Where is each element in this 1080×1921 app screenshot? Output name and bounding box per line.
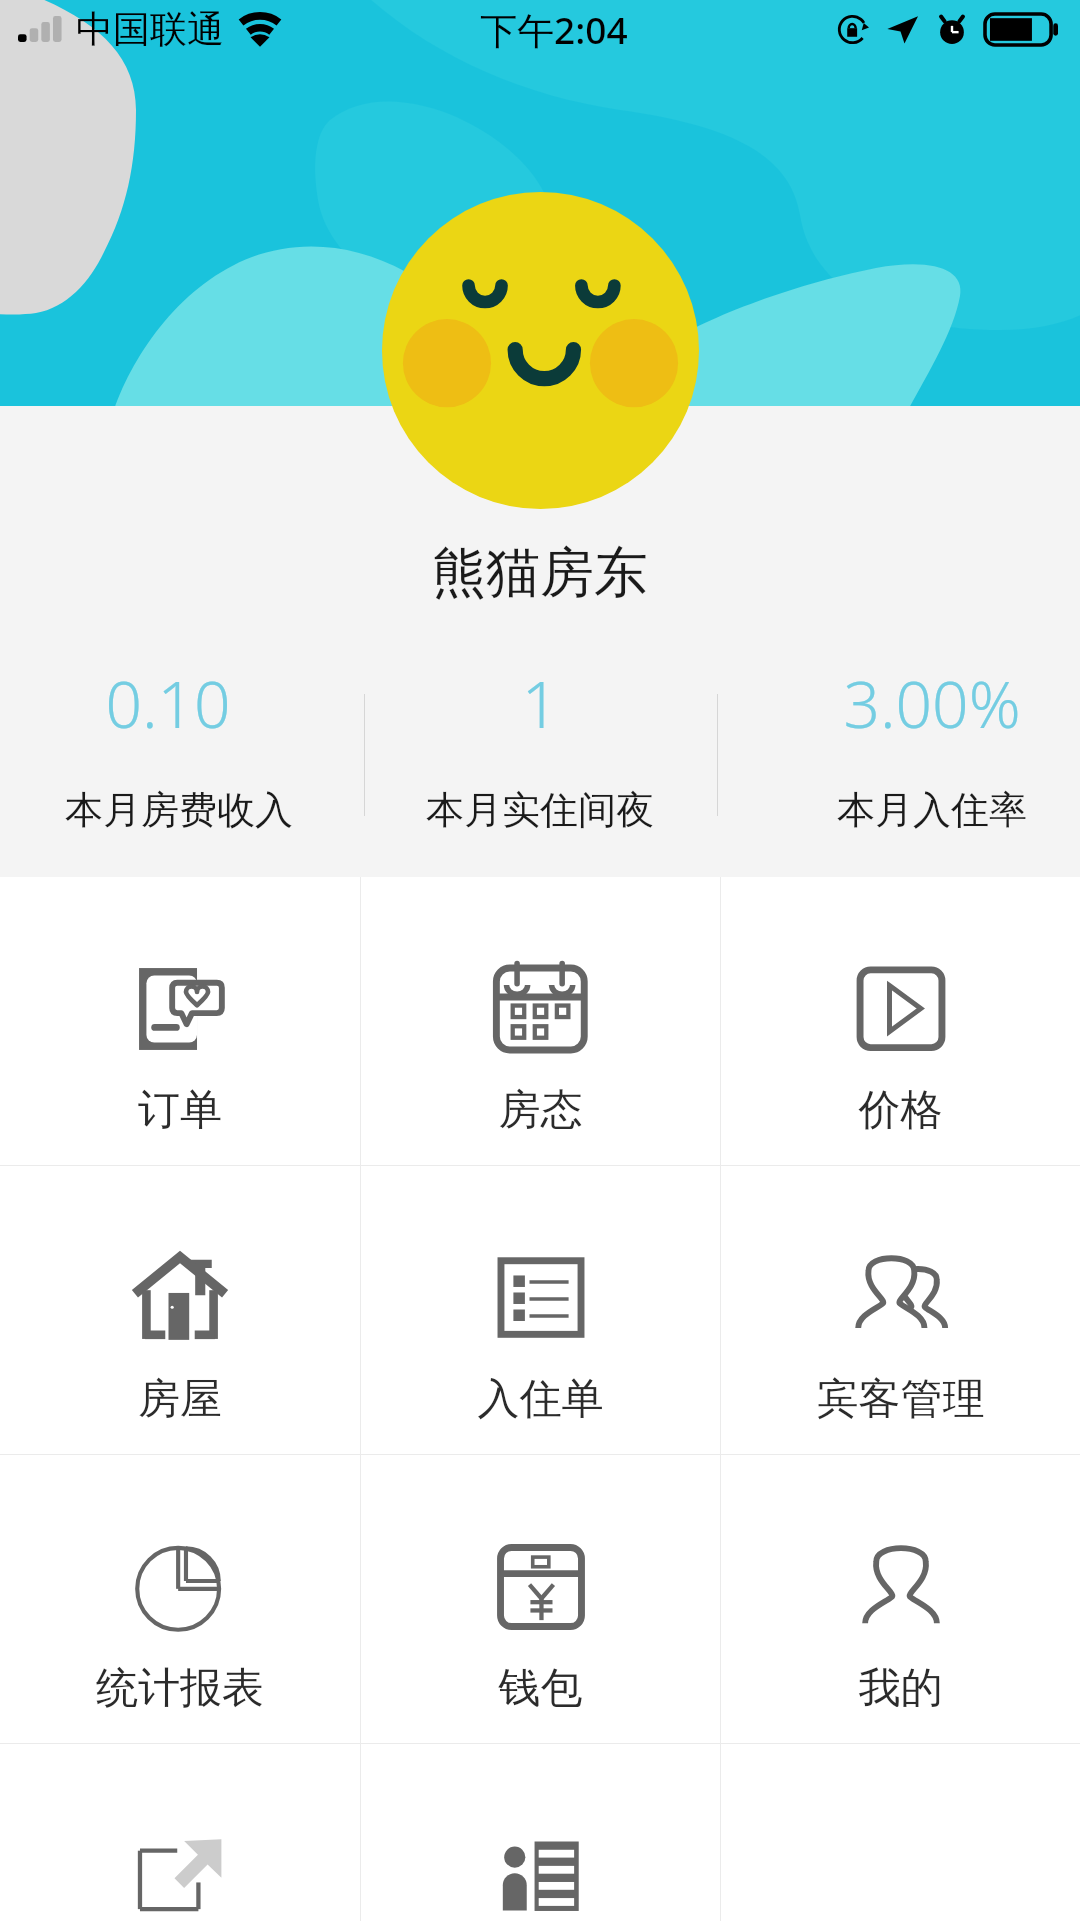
staticText: 订单 [0,1084,360,1137]
staticText: 价格 [721,1084,1080,1137]
button[interactable]: 统计报表 [0,1455,360,1743]
staticText: 房屋 [0,1373,360,1426]
button[interactable]: 名片 [361,1744,720,1921]
staticText: 钱包 [361,1662,720,1715]
button[interactable]: 房屋 [0,1166,360,1454]
button[interactable]: 我的 [721,1455,1080,1743]
button[interactable]: 订单 [0,877,360,1165]
staticText: 下午2:04 [480,4,628,55]
staticText: 统计报表 [0,1662,360,1715]
staticText: 本月房费收入 [0,786,359,834]
button[interactable]: 房态 [361,877,720,1165]
staticText: 房态 [361,1084,720,1137]
button[interactable]: 宾客管理 [721,1166,1080,1454]
button[interactable]: 钱包 [361,1455,720,1743]
button[interactable]: 价格 [721,877,1080,1165]
staticText: 宾客管理 [721,1373,1080,1426]
staticText: 1 [360,660,720,747]
staticText: 中国联通 [76,6,224,53]
staticText: 本月实住间夜 [360,786,720,834]
staticText: 0.10 [0,660,348,747]
staticText: 入住单 [361,1373,720,1426]
staticText: 本月入住率 [752,786,1080,834]
staticText: 3.00% [752,660,1080,747]
staticText: 我的 [721,1662,1080,1715]
button[interactable]: 推广 [0,1744,360,1921]
staticText: 熊猫房东 [0,539,1080,607]
button[interactable]: 入住单 [361,1166,720,1454]
